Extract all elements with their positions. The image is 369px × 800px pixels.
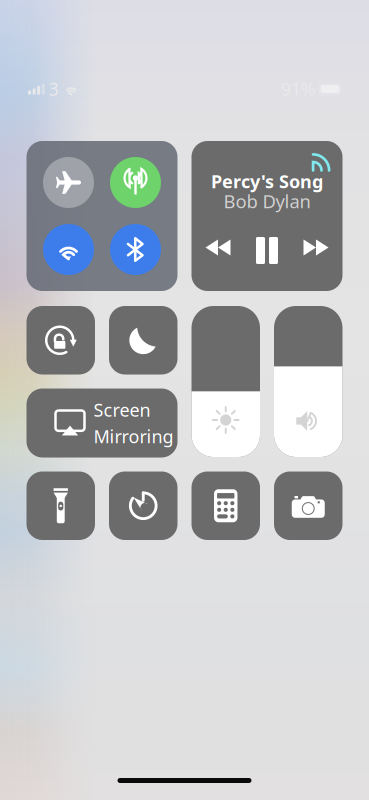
button[interactable]: Volume: [274, 306, 342, 457]
button[interactable]: Screen: [26, 388, 177, 457]
button[interactable]: Do Not Disturb: [109, 306, 177, 374]
button[interactable]: AirPlay: [311, 141, 342, 172]
button[interactable]: Bluetooth: [110, 224, 161, 275]
button[interactable]: Cellular Data: [110, 157, 161, 208]
button[interactable]: Flashlight: [26, 471, 95, 540]
staticText: Percy's Song: [211, 169, 323, 193]
button[interactable]: Calculator: [191, 471, 260, 540]
button[interactable]: Previous: [205, 236, 230, 265]
button[interactable]: Wi-Fi: [43, 224, 94, 275]
staticText: Mirroring: [93, 424, 173, 448]
button[interactable]: Pause: [256, 236, 278, 265]
button[interactable]: Camera: [274, 471, 342, 540]
button[interactable]: Next: [303, 236, 328, 265]
staticText: Bob Dylan: [223, 188, 310, 214]
button[interactable]: Brightness: [191, 306, 260, 457]
staticText: Screen: [93, 397, 150, 422]
staticText: 3: [49, 77, 59, 101]
button[interactable]: Timer: [109, 471, 177, 540]
button[interactable]: Airplane Mode: [43, 157, 94, 208]
button[interactable]: Rotation Lock: [26, 306, 95, 374]
